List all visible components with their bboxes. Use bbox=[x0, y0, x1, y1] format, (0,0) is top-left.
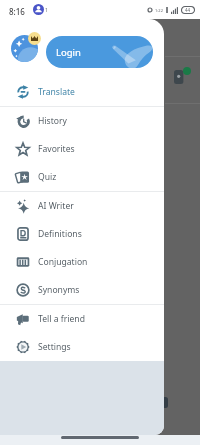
staticText: Settings bbox=[38, 341, 71, 353]
staticText: Definitions bbox=[38, 228, 82, 240]
staticText: Quiz bbox=[38, 171, 57, 183]
button[interactable]: History bbox=[0, 107, 164, 135]
button[interactable]: Conjugation bbox=[0, 248, 164, 276]
staticText: Conjugation bbox=[38, 256, 88, 268]
button[interactable]: Favorites bbox=[0, 135, 164, 163]
button[interactable]: Tell a friend bbox=[0, 305, 164, 333]
button[interactable]: Synonyms bbox=[0, 276, 164, 304]
button[interactable]: Definitions bbox=[0, 220, 164, 248]
staticText: History bbox=[38, 115, 67, 127]
button[interactable]: Quiz bbox=[0, 163, 164, 191]
staticText: 44 bbox=[185, 7, 191, 13]
staticText: Favorites bbox=[38, 143, 75, 155]
button[interactable]: Settings bbox=[0, 333, 164, 361]
staticText: 8:16 bbox=[9, 6, 25, 17]
staticText: AI Writer bbox=[38, 200, 74, 212]
staticText: Tell a friend bbox=[38, 313, 85, 325]
button[interactable]: AI Writer bbox=[0, 192, 164, 220]
button[interactable]: Translate bbox=[0, 78, 164, 106]
staticText: Translate bbox=[38, 86, 75, 98]
staticText: 1 bbox=[45, 7, 48, 14]
staticText: 1:22 bbox=[155, 8, 163, 13]
staticText: Login bbox=[56, 46, 81, 59]
other: Account bbox=[33, 4, 44, 15]
staticText: Synonyms bbox=[38, 284, 80, 296]
button[interactable]: Login bbox=[46, 36, 153, 68]
